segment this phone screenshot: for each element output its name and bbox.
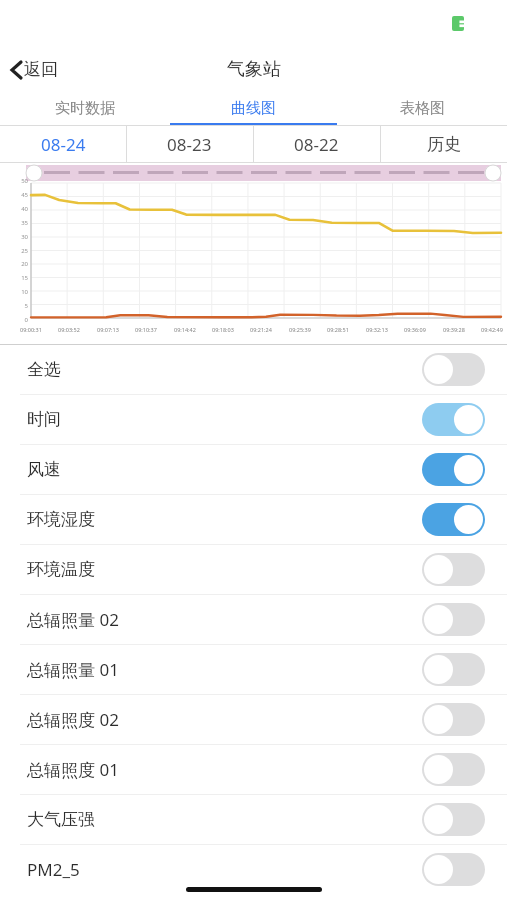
staticText: 09:28:51 [327,326,349,333]
staticText: 09:32:13 [366,326,388,333]
staticText: PM2_5 [27,858,80,881]
staticText: 09:07:13 [97,326,119,333]
button[interactable]: 总辐照量 02 [0,594,507,644]
staticText: 风速 [27,459,61,480]
staticText: 气象站 [227,58,281,81]
staticText: 25 [21,247,28,255]
other: Toggle [422,803,485,836]
button[interactable]: 历史 [380,125,507,163]
button[interactable]: PM2_5 [0,844,507,894]
staticText: 5 [24,302,28,310]
staticText: 总辐照度 02 [27,708,119,731]
button[interactable]: 总辐照度 02 [0,694,507,744]
staticText: 09:36:09 [404,326,426,333]
staticText: 09:25:39 [289,326,311,333]
staticText: 时间 [27,409,61,430]
other: Toggle [422,703,485,736]
staticText: 40 [21,205,28,213]
staticText: 实时数据 [55,99,115,118]
staticText: 20 [21,260,28,268]
staticText: 09:00:31 [20,326,42,333]
button[interactable]: 实时数据 [0,92,169,125]
button[interactable]: 环境湿度 [0,494,507,544]
other: Toggle [422,603,485,636]
staticText: 09:42:49 [481,326,503,333]
staticText: 09:03:52 [58,326,80,333]
staticText: 35 [21,219,28,227]
staticText: 45 [21,191,28,199]
staticText: 09:21:24 [250,326,272,333]
other: Toggle [422,653,485,686]
staticText: 08-22 [294,133,339,156]
staticText: 15 [21,274,28,282]
other: Toggle [422,403,485,436]
staticText: 环境温度 [27,559,95,580]
staticText: 09:10:37 [135,326,157,333]
button[interactable]: 总辐照度 01 [0,744,507,794]
button[interactable]: 返回 [0,53,70,86]
other: Toggle [422,753,485,786]
other: Toggle [422,503,485,536]
staticText: 总辐照度 01 [27,758,119,781]
button[interactable]: 大气压强 [0,794,507,844]
staticText: 08-24 [41,133,86,156]
staticText: 0 [24,316,28,324]
staticText: 环境湿度 [27,509,95,530]
staticText: 历史 [427,134,461,155]
button[interactable]: 环境温度 [0,544,507,594]
button[interactable]: 全选 [0,345,507,394]
other: Toggle [422,853,485,886]
button[interactable]: 08-23 [126,125,253,163]
staticText: 总辐照量 01 [27,658,119,681]
staticText: 全选 [27,359,61,380]
button[interactable]: 时间 [0,394,507,444]
staticText: 09:14:42 [174,326,196,333]
button[interactable]: 风速 [0,444,507,494]
staticText: 表格图 [400,99,445,118]
staticText: 大气压强 [27,809,95,830]
button[interactable]: 08-24 [0,125,126,163]
staticText: 08-23 [167,133,212,156]
staticText: 09:39:28 [443,326,465,333]
other: Toggle [422,553,485,586]
button[interactable]: 08-22 [253,125,380,163]
staticText: 10 [21,288,28,296]
staticText: 曲线图 [231,99,276,118]
other: Toggle [422,353,485,386]
button[interactable]: 曲线图 [169,92,338,125]
staticText: 09:18:03 [212,326,234,333]
staticText: 50 [21,177,28,185]
other: Toggle [422,453,485,486]
button[interactable]: 表格图 [338,92,507,125]
staticText: 30 [21,233,28,241]
staticText: 总辐照量 02 [27,608,119,631]
staticText: 返回 [24,59,58,80]
button[interactable]: 总辐照量 01 [0,644,507,694]
